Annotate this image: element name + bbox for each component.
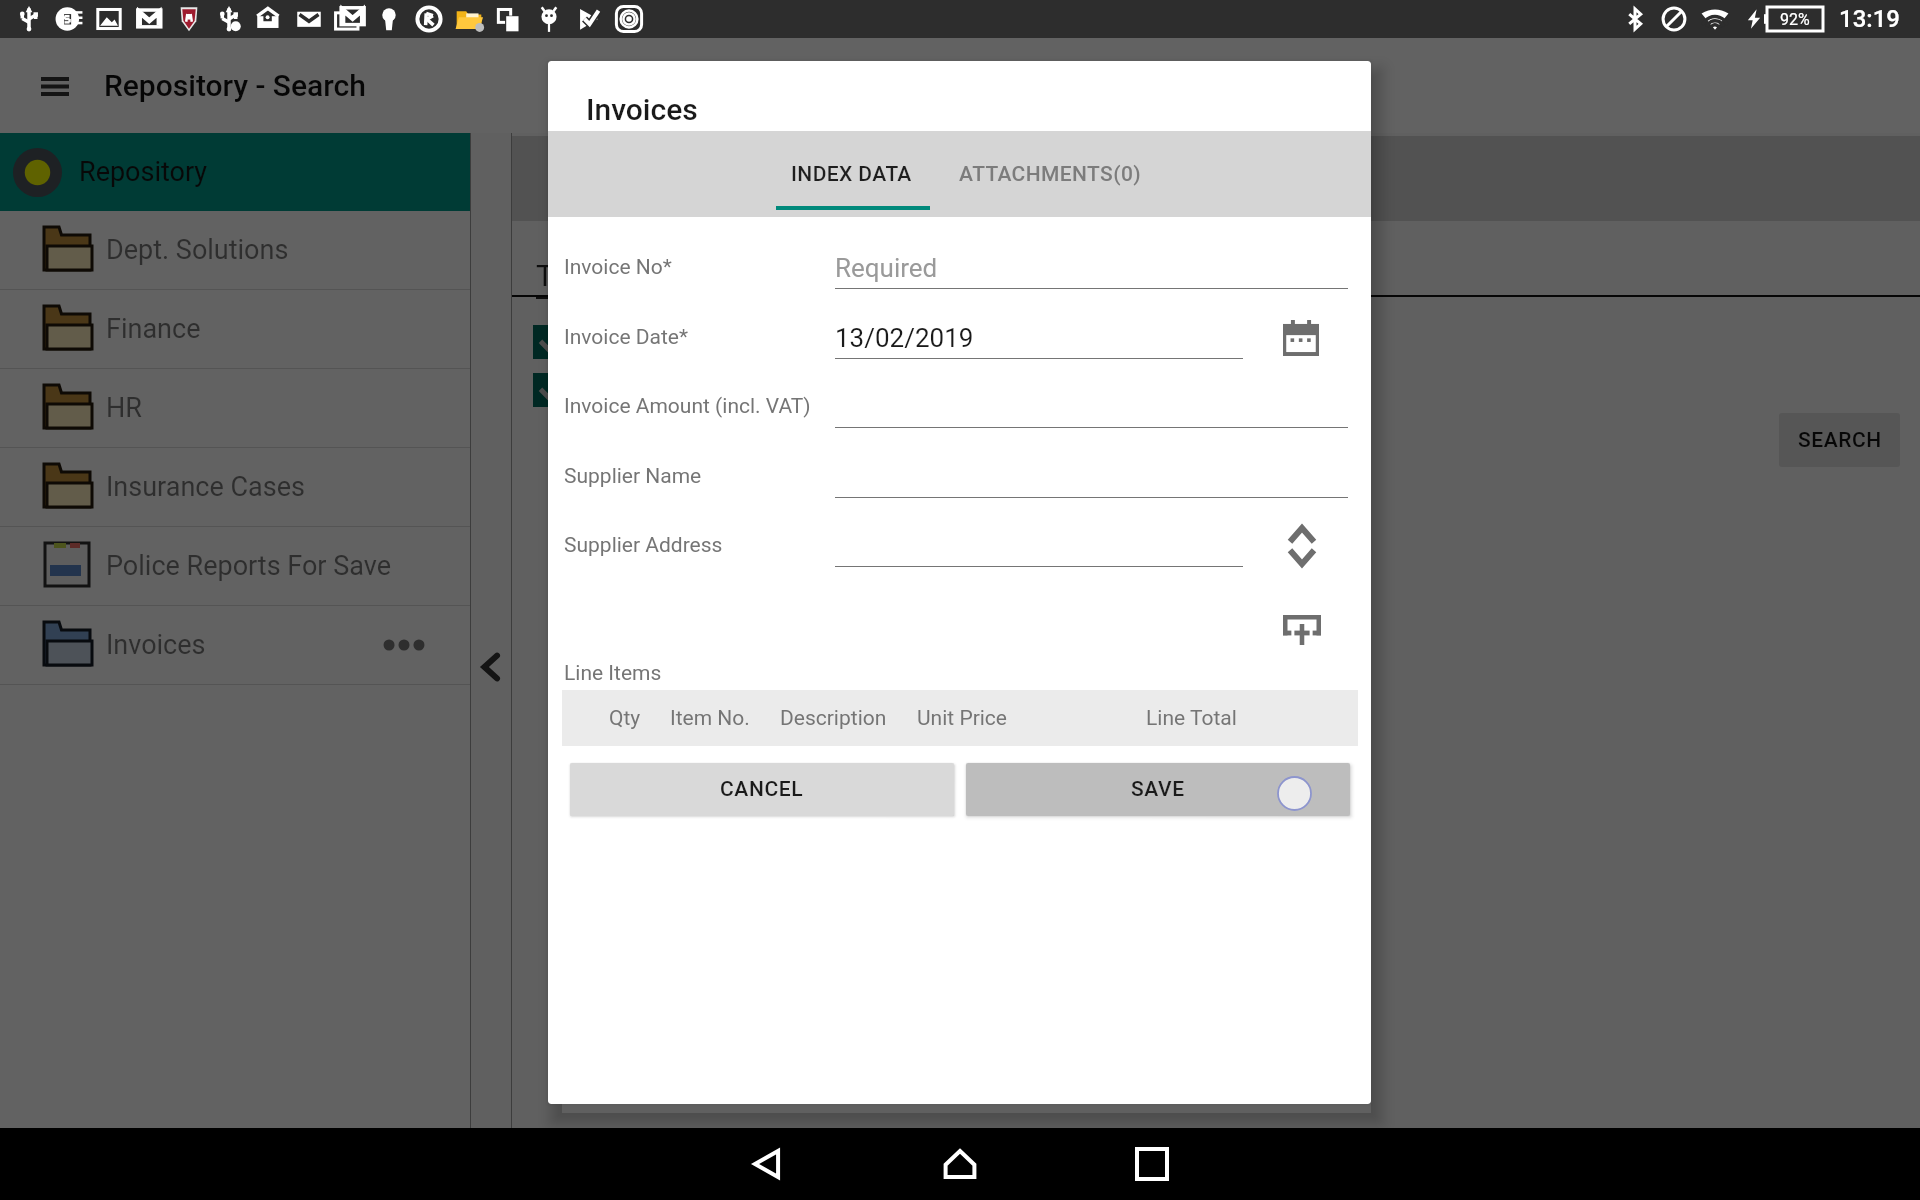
staticText: 13:19 — [1839, 5, 1900, 33]
staticText: INDEX DATA — [791, 162, 912, 187]
button[interactable]: Add line item — [1279, 607, 1325, 653]
staticText: Invoices — [586, 92, 698, 127]
staticText: Finance — [106, 313, 201, 345]
staticText: Supplier Address — [564, 533, 723, 558]
button[interactable]: Expand — [1279, 523, 1325, 569]
button[interactable]: Supplier Name — [835, 450, 1348, 498]
staticText: Required — [835, 253, 938, 283]
staticText: Insurance Cases — [106, 471, 305, 503]
button[interactable]: CANCEL — [570, 763, 954, 816]
button[interactable]: Pick date — [1278, 315, 1324, 361]
staticText: Qty — [609, 706, 641, 731]
staticText: 13/02/2019 — [835, 323, 974, 353]
button[interactable]: SEARCH — [1779, 413, 1900, 467]
staticText: SEARCH — [1798, 428, 1882, 453]
button[interactable]: Collapse — [471, 647, 511, 687]
staticText: 92% — [1780, 10, 1810, 29]
staticText: Type — [536, 258, 600, 293]
button[interactable]: HR — [0, 369, 470, 447]
staticText: ATTACHMENTS(0) — [959, 162, 1142, 187]
staticText: HR — [106, 392, 142, 424]
button[interactable]: Supplier Address — [835, 519, 1243, 567]
staticText: Supplier Name — [564, 464, 702, 489]
staticText: Invoice No* — [564, 255, 672, 280]
button[interactable]: Home — [912, 1128, 1008, 1200]
staticText: Unit Price — [917, 706, 1007, 731]
staticText: Police Reports For Save — [106, 550, 391, 582]
button[interactable]: Recent apps — [1104, 1128, 1200, 1200]
button[interactable]: SAVE — [966, 763, 1350, 816]
button[interactable]: Insurance Cases — [0, 448, 470, 526]
button[interactable]: Menu — [32, 63, 78, 109]
staticText: Line Total — [1146, 706, 1237, 731]
staticText: Description — [780, 706, 887, 731]
button[interactable]: Repository — [0, 133, 470, 211]
staticText: Repository — [79, 156, 208, 188]
staticText: Line Items — [564, 661, 662, 686]
staticText: Repository - Search — [104, 68, 366, 103]
staticText: Invoices — [106, 629, 206, 661]
button[interactable]: Invoice Amount (incl. VAT) — [835, 380, 1348, 428]
staticText: Dept. Solutions — [106, 234, 289, 266]
button[interactable]: Finance — [0, 290, 470, 368]
button[interactable]: INDEX DATA — [748, 131, 954, 217]
button[interactable]: Dept. Solutions — [0, 211, 470, 289]
staticText: Invoice Date* — [564, 325, 689, 350]
button[interactable]: Invoice No* — [835, 241, 1348, 289]
button[interactable]: More options — [374, 615, 434, 675]
button[interactable]: Invoices — [0, 606, 470, 684]
button[interactable]: Police Reports For Save — [0, 527, 470, 605]
button[interactable]: Invoice Date* — [835, 311, 1243, 359]
staticText: Item No. — [670, 706, 750, 731]
button[interactable]: ATTACHMENTS(0) — [928, 131, 1172, 217]
staticText: Invoice Amount (incl. VAT) — [564, 394, 811, 419]
button[interactable]: Back — [720, 1128, 816, 1200]
staticText: CANCEL — [720, 777, 804, 802]
staticText: SAVE — [1131, 777, 1185, 802]
